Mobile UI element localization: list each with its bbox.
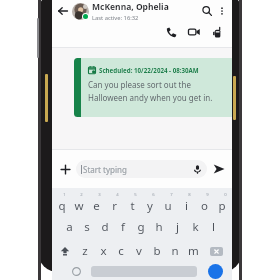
staticText: l (212, 219, 215, 235)
button[interactable]: l (204, 215, 222, 239)
staticText: d (101, 219, 109, 235)
button[interactable]: z (76, 239, 94, 263)
staticText: Halloween andy when you get in. (88, 92, 213, 103)
button[interactable]: 0 (213, 191, 231, 215)
button[interactable]: d (96, 215, 114, 239)
button[interactable]: Push to talk (208, 23, 226, 41)
button[interactable]: f (114, 215, 132, 239)
button[interactable]: 5 (123, 191, 141, 215)
staticText: 0 (224, 192, 227, 198)
staticText: 6 (152, 192, 155, 198)
staticText: u (164, 198, 172, 214)
button[interactable]: More options (215, 4, 229, 18)
button[interactable]: c (112, 239, 130, 263)
button[interactable]: 3 (87, 191, 105, 215)
button[interactable]: 1 (53, 191, 70, 215)
staticText: Last active: 16:32 (92, 14, 139, 22)
staticText: m (188, 243, 199, 259)
staticText: c (118, 243, 124, 259)
button[interactable]: 4 (105, 191, 123, 215)
staticText: Start typing (83, 164, 191, 175)
button[interactable]: j (168, 215, 186, 239)
staticText: r (112, 198, 117, 214)
button[interactable]: Add attachment (56, 160, 74, 178)
staticText: b (153, 243, 161, 259)
button[interactable]: Backspace (202, 239, 231, 263)
staticText: n (171, 243, 179, 259)
button[interactable]: a (61, 215, 78, 239)
button[interactable]: 8 (177, 191, 195, 215)
button[interactable]: Send (210, 160, 228, 178)
staticText: 8 (188, 192, 191, 198)
staticText: y (147, 198, 153, 214)
button[interactable]: m (184, 239, 202, 263)
staticText: g (137, 219, 145, 235)
button[interactable]: b (148, 239, 166, 263)
button[interactable]: 7 (159, 191, 177, 215)
button[interactable]: Start typing (76, 160, 207, 178)
staticText: 5 (134, 192, 137, 198)
button[interactable]: Back (55, 3, 71, 19)
button[interactable]: v (130, 239, 148, 263)
staticText: f (121, 219, 125, 235)
button[interactable]: Voice call (162, 23, 180, 41)
staticText: k (192, 219, 199, 235)
button[interactable]: Video call (185, 23, 203, 41)
button[interactable]: Search (199, 3, 215, 19)
button[interactable]: 9 (195, 191, 213, 215)
staticText: v (136, 243, 142, 259)
button[interactable]: k (186, 215, 204, 239)
staticText: 4 (116, 192, 119, 198)
button[interactable]: Shift (53, 239, 76, 263)
staticText: o (201, 198, 208, 214)
button[interactable]: 6 (141, 191, 159, 215)
staticText: Can you please sort out the (88, 79, 191, 90)
staticText: z (82, 243, 88, 259)
button[interactable]: Voice input (191, 163, 203, 175)
staticText: s (84, 219, 90, 235)
staticText: j (176, 219, 179, 235)
staticText: 7 (170, 192, 173, 198)
staticText: t (130, 198, 135, 214)
staticText: 1 (63, 192, 66, 198)
button[interactable]: s (78, 215, 96, 239)
button[interactable]: h (150, 215, 168, 239)
button[interactable]: g (132, 215, 150, 239)
button[interactable]: 2 (70, 191, 87, 215)
staticText: h (155, 219, 163, 235)
staticText: 9 (206, 192, 209, 198)
staticText: McKenna, Ophelia (92, 1, 169, 13)
staticText: w (74, 198, 84, 214)
staticText: i (185, 198, 188, 214)
button[interactable]: Scheduled: 10/22/2024 - 08:30AM (74, 58, 232, 117)
button[interactable]: Enter (208, 264, 223, 279)
staticText: x (100, 243, 107, 259)
staticText: q (58, 198, 66, 214)
staticText: Scheduled: 10/22/2024 - 08:30AM (99, 66, 199, 74)
button[interactable]: n (166, 239, 184, 263)
staticText: 2 (80, 192, 83, 198)
button[interactable]: Emoji (70, 265, 83, 278)
button[interactable]: x (94, 239, 112, 263)
staticText: p (218, 198, 226, 214)
staticText: a (66, 219, 73, 235)
staticText: e (93, 198, 100, 214)
staticText: 3 (98, 192, 101, 198)
